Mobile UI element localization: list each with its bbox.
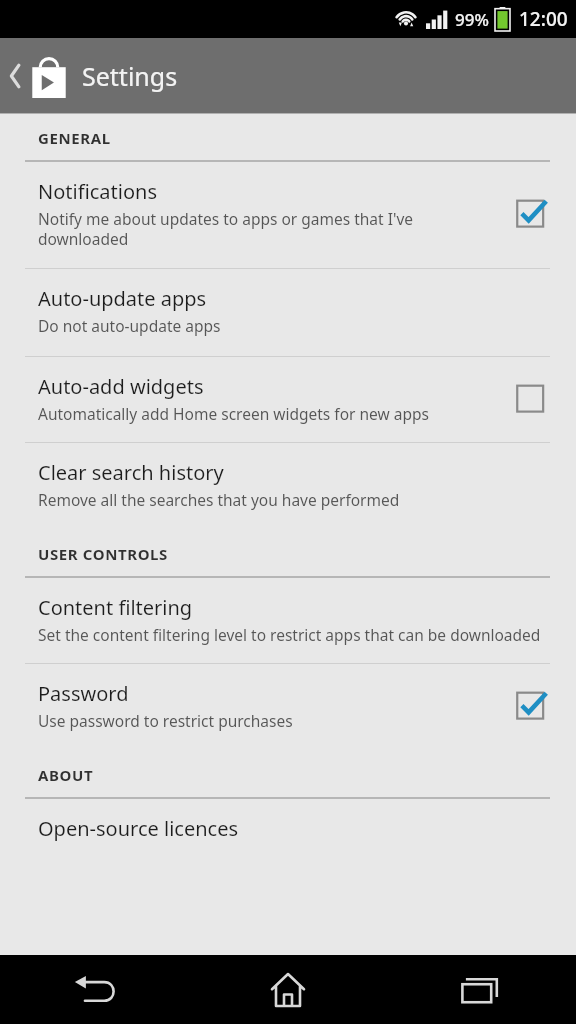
button[interactable]: Recent apps xyxy=(384,955,576,1024)
button[interactable]: Password xyxy=(0,664,576,751)
staticText: 12:00 xyxy=(519,6,568,32)
staticText: Clear search history xyxy=(38,459,224,486)
button[interactable]: Checked xyxy=(510,684,554,728)
button[interactable]: Auto-update apps xyxy=(0,269,576,356)
staticText: USER CONTROLS xyxy=(38,544,168,564)
staticText: Use password to restrict purchases xyxy=(38,710,293,731)
button[interactable]: Content filtering xyxy=(0,578,576,663)
staticText: Auto-add widgets xyxy=(38,373,204,400)
staticText: Auto-update apps xyxy=(38,285,207,312)
button[interactable]: Navigate up xyxy=(0,44,72,108)
button[interactable]: Clear search history xyxy=(0,443,576,530)
staticText: Notifications xyxy=(38,178,157,205)
staticText: GENERAL xyxy=(38,128,111,148)
button[interactable]: Home xyxy=(192,955,384,1024)
staticText: Remove all the searches that you have pe… xyxy=(38,489,400,510)
button[interactable]: Open-source licences xyxy=(0,799,576,862)
staticText: Notify me about updates to apps or games… xyxy=(38,208,500,250)
button[interactable]: Auto-add widgets xyxy=(0,357,576,442)
button[interactable]: Back xyxy=(0,955,192,1024)
staticText: Password xyxy=(38,680,129,707)
staticText: Do not auto-update apps xyxy=(38,315,221,336)
staticText: 99% xyxy=(455,8,489,31)
button[interactable]: Notifications xyxy=(0,162,576,268)
staticText: ABOUT xyxy=(38,765,94,785)
button[interactable]: Checked xyxy=(510,192,554,236)
staticText: Open-source licences xyxy=(38,815,238,842)
staticText: Settings xyxy=(82,59,178,93)
button[interactable]: Unchecked xyxy=(510,377,554,421)
staticText: Set the content filtering level to restr… xyxy=(38,624,541,645)
staticText: Automatically add Home screen widgets fo… xyxy=(38,403,429,424)
staticText: Content filtering xyxy=(38,594,193,621)
